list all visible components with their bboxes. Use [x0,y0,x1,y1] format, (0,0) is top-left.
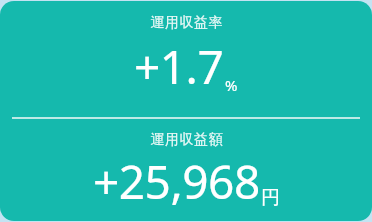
staticText: +1.7 [134,35,224,98]
button[interactable]: 運用収益率 [0,1,372,221]
staticText: 運用収益額 [150,131,223,149]
staticText: +25,968 [93,150,260,213]
staticText: 円 [261,186,280,210]
staticText: % [225,75,238,95]
staticText: 運用収益率 [150,14,223,32]
